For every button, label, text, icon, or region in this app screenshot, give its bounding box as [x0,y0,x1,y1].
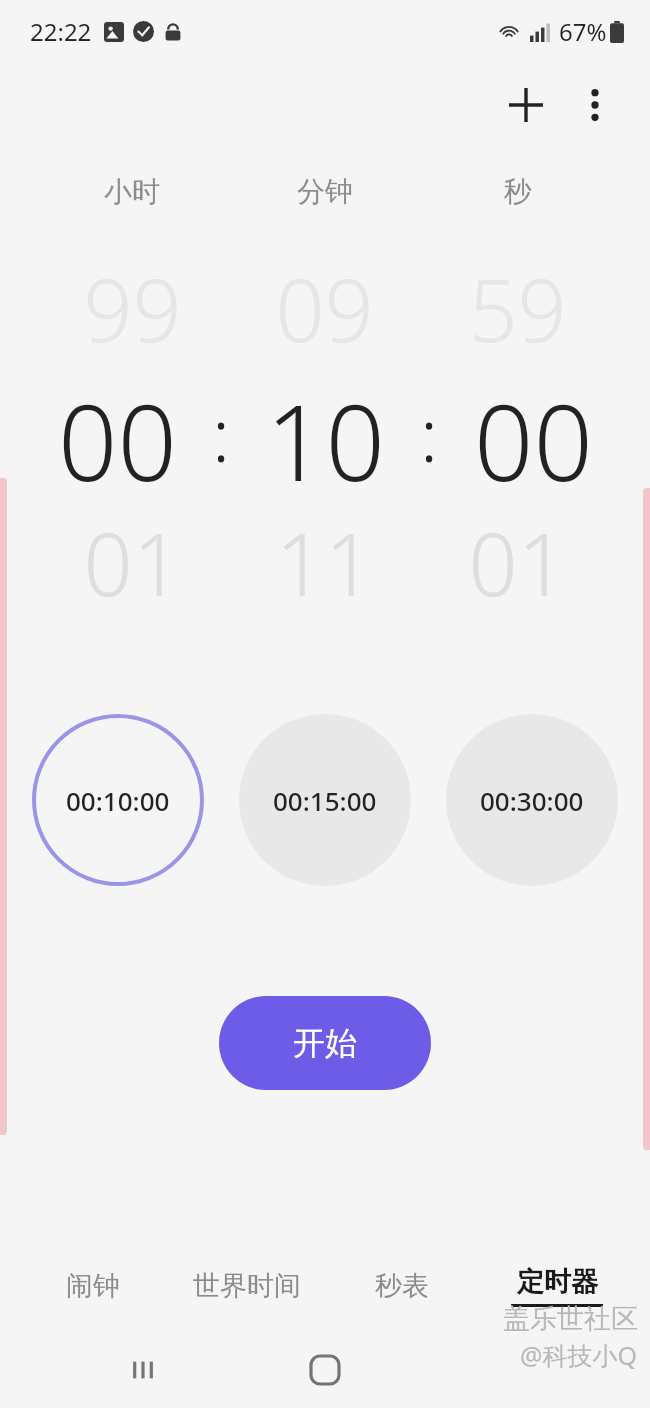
staticText: 22:22 [30,15,92,48]
button[interactable]: Add timer [490,69,562,141]
button[interactable]: 00:15:00 [239,714,411,886]
button[interactable]: 开始 [219,996,431,1090]
button[interactable]: 99 [36,250,228,367]
staticText: 00 [474,370,593,512]
staticText: 09 [275,250,374,367]
staticText: 01 [83,504,182,621]
staticText: 闹钟 [66,1269,120,1303]
button[interactable]: 闹钟 [16,1240,170,1332]
staticText: 00:30:00 [480,783,584,818]
button[interactable]: Recents [108,1335,178,1405]
staticText: 11 [275,504,374,621]
button[interactable]: 01 [421,504,614,621]
button[interactable]: 定时器 [479,1240,634,1332]
staticText: 开始 [293,1023,357,1063]
staticText: 59 [468,250,567,367]
button[interactable]: 11 [228,504,421,621]
button[interactable]: 00:30:00 [446,714,618,886]
staticText: 10 [266,370,385,512]
button[interactable]: 00:10:00 [32,714,204,886]
staticText: 秒表 [375,1269,429,1303]
staticText: 99 [83,250,182,367]
staticText: : [420,383,439,484]
staticText: 世界时间 [193,1269,301,1303]
staticText: 小时 [104,174,160,209]
button[interactable]: Home [290,1335,360,1405]
staticText: 67% [559,15,607,48]
staticText: 盖乐世社区 [503,1302,638,1336]
staticText: 分钟 [297,174,353,209]
staticText: 01 [468,504,567,621]
button[interactable]: 01 [36,504,228,621]
button[interactable]: More options [562,72,628,138]
staticText: 定时器 [517,1265,598,1299]
staticText: @科技小Q [520,1338,638,1372]
button[interactable]: 59 [421,250,614,367]
staticText: 00 [58,370,177,512]
staticText: 秒 [504,174,532,209]
button[interactable]: 世界时间 [170,1240,324,1332]
button[interactable]: 09 [228,250,421,367]
staticText: 00:10:00 [66,783,170,818]
staticText: 00:15:00 [273,783,377,818]
button[interactable]: 秒表 [324,1240,479,1332]
staticText: : [212,383,231,484]
